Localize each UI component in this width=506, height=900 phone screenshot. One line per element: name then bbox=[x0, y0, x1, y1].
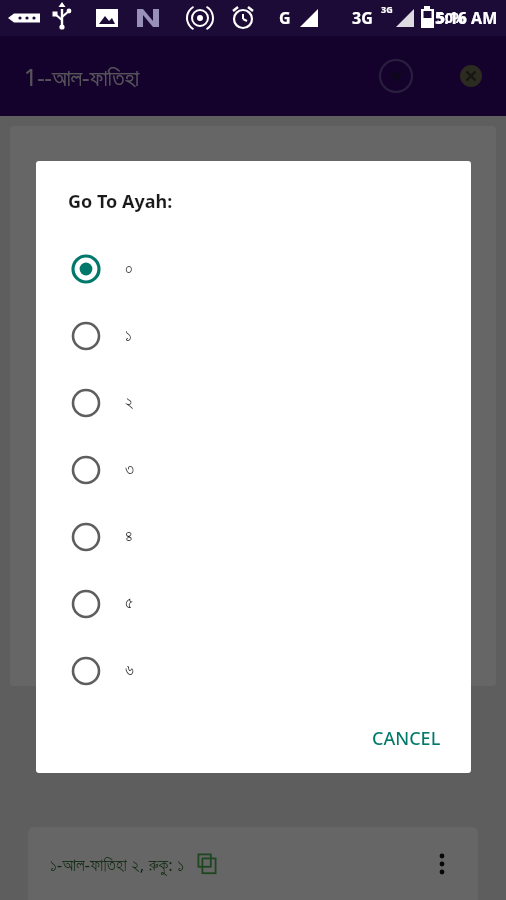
button[interactable]: ১-আল-ফাতিহা ২, রুকু: ১ bbox=[28, 827, 478, 900]
staticText: 3G bbox=[381, 3, 393, 15]
staticText: ৬ bbox=[125, 662, 134, 679]
staticText: Go To Ayah: bbox=[68, 189, 173, 214]
button[interactable]: ৪ bbox=[36, 503, 471, 570]
staticText: ০ bbox=[125, 260, 133, 277]
staticText: ১-আল-ফাতিহা ২, রুকু: ১ bbox=[50, 853, 185, 876]
button[interactable]: ৩ bbox=[36, 436, 471, 503]
button[interactable]: CANCEL bbox=[362, 718, 451, 759]
button[interactable]: ১ bbox=[36, 302, 471, 369]
staticText: ৩ bbox=[125, 461, 135, 478]
staticText: ৫ bbox=[125, 595, 134, 612]
staticText: ৪ bbox=[125, 528, 133, 545]
staticText: ২ bbox=[125, 394, 134, 411]
staticText: ১ bbox=[125, 327, 132, 344]
staticText: G bbox=[279, 7, 291, 29]
button[interactable]: ০ bbox=[36, 235, 471, 302]
button[interactable]: ৫ bbox=[36, 570, 471, 637]
button[interactable]: More options bbox=[422, 844, 462, 884]
button[interactable]: Copy bbox=[195, 851, 221, 877]
button[interactable]: Close bbox=[454, 59, 488, 93]
staticText: 1--আল-ফাতিহা bbox=[24, 61, 140, 92]
staticText: 5:16 AM bbox=[435, 7, 498, 29]
button[interactable]: Go to ayah bbox=[376, 56, 416, 96]
staticText: 50% bbox=[437, 8, 466, 27]
staticText: 3G bbox=[352, 7, 373, 29]
staticText: CANCEL bbox=[372, 726, 441, 751]
button[interactable]: ৬ bbox=[36, 637, 471, 704]
button[interactable]: ২ bbox=[36, 369, 471, 436]
